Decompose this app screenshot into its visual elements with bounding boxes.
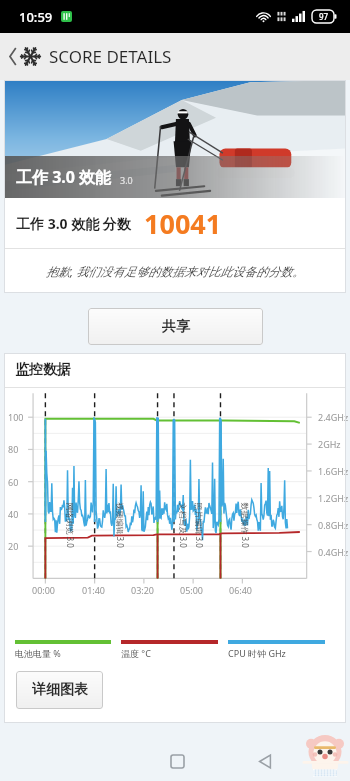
staticText: 01:40	[82, 584, 106, 596]
staticText: 40	[8, 508, 19, 520]
staticText: 文档写及 3.0	[177, 502, 188, 548]
staticText: 电池电量 %	[15, 647, 61, 659]
staticText: 3.0	[120, 174, 133, 186]
staticText: 网络浏览 3.0	[64, 502, 75, 548]
button[interactable]: Back	[248, 744, 282, 778]
staticText: 工作 3.0 效能	[16, 166, 112, 188]
staticText: 06:40	[229, 584, 253, 596]
button[interactable]: 共享	[88, 308, 263, 345]
staticText: 视频编辑 3.0	[114, 502, 125, 548]
button[interactable]: Back	[7, 45, 174, 68]
staticText: 详细图表	[32, 681, 88, 699]
staticText: 2GHz	[318, 438, 341, 450]
staticText: CPU 时钟 GHz	[228, 647, 286, 659]
staticText: 10:59	[19, 8, 53, 26]
staticText: 抱歉, 我们没有足够的数据来对比此设备的分数。	[46, 263, 305, 279]
staticText: 0.8GHz	[318, 519, 349, 531]
staticText: 20	[8, 540, 19, 552]
staticText: 0.4GHz	[318, 546, 349, 558]
staticText: 05:00	[180, 584, 204, 596]
staticText: SCORE DETAILS	[49, 45, 172, 68]
staticText: 监控数据	[15, 361, 71, 379]
staticText: 照片编辑 3.0	[193, 502, 204, 548]
staticText: 00:00	[32, 584, 56, 596]
staticText: 温度 °C	[121, 647, 151, 659]
staticText: 共享	[162, 318, 190, 336]
staticText: 10041	[144, 205, 222, 242]
button[interactable]: Home	[160, 744, 194, 778]
staticText: 1.2GHz	[318, 492, 349, 504]
staticText: 97	[319, 11, 329, 22]
button[interactable]: 详细图表	[16, 671, 103, 709]
staticText: 数据操作 3.0	[239, 502, 250, 548]
staticText: 100	[8, 411, 24, 423]
staticText: 80	[8, 443, 19, 455]
staticText: 工作 3.0 效能 分数	[16, 214, 131, 233]
staticText: 2.4GHz	[318, 411, 349, 423]
staticText: 1.6GHz	[318, 465, 349, 477]
staticText: 60	[8, 476, 19, 488]
staticText: 03:20	[131, 584, 155, 596]
